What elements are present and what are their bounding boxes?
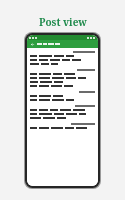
staticText: Post view <box>39 15 87 29</box>
button[interactable]: Back <box>30 42 35 47</box>
